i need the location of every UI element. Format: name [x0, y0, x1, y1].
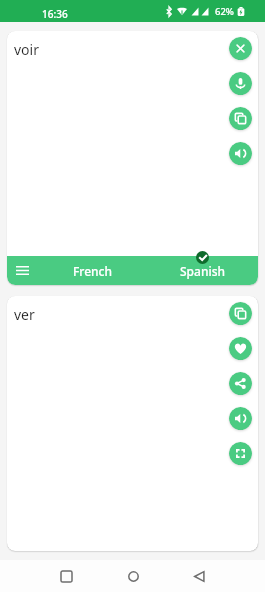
button[interactable]: Close — [229, 37, 252, 60]
button[interactable]: Back — [166, 560, 232, 592]
button[interactable]: Fullscreen — [229, 442, 252, 465]
button[interactable]: French — [38, 256, 148, 285]
button[interactable]: Home — [100, 560, 166, 592]
button[interactable]: Spanish — [148, 256, 258, 285]
button[interactable]: Listen — [229, 142, 252, 165]
staticText: Spanish — [180, 263, 226, 279]
staticText: 16:36 — [42, 7, 68, 21]
staticText: French — [73, 263, 113, 279]
button[interactable]: Menu — [7, 256, 38, 285]
button[interactable]: Share — [229, 372, 252, 395]
button[interactable]: Recents — [33, 560, 100, 592]
staticText: 62% — [215, 5, 234, 18]
button[interactable]: Copy — [229, 302, 252, 325]
button[interactable]: Copy — [229, 107, 252, 130]
button[interactable]: Favorite — [229, 337, 252, 360]
button[interactable]: Listen — [229, 407, 252, 430]
staticText: ver — [14, 305, 35, 324]
staticText: voir — [14, 40, 39, 59]
button[interactable]: Voice input — [229, 72, 252, 95]
